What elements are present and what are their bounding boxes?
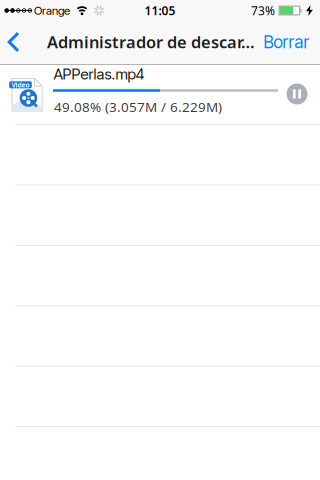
- staticText: 49.08% (3.057M / 6.229M): [54, 98, 222, 116]
- button[interactable]: Video: [0, 65, 320, 125]
- staticText: Borrar: [263, 32, 309, 52]
- button[interactable]: Atrás: [7, 31, 20, 52]
- staticText: 11:05: [144, 2, 175, 19]
- staticText: Orange: [34, 4, 70, 17]
- button[interactable]: Borrar: [263, 32, 309, 52]
- button[interactable]: Pausar: [286, 83, 308, 105]
- staticText: 73%: [251, 2, 275, 19]
- staticText: APPerlas.mp4: [53, 65, 144, 83]
- staticText: Video: [11, 80, 29, 89]
- staticText: Administrador de descar…: [47, 31, 255, 53]
